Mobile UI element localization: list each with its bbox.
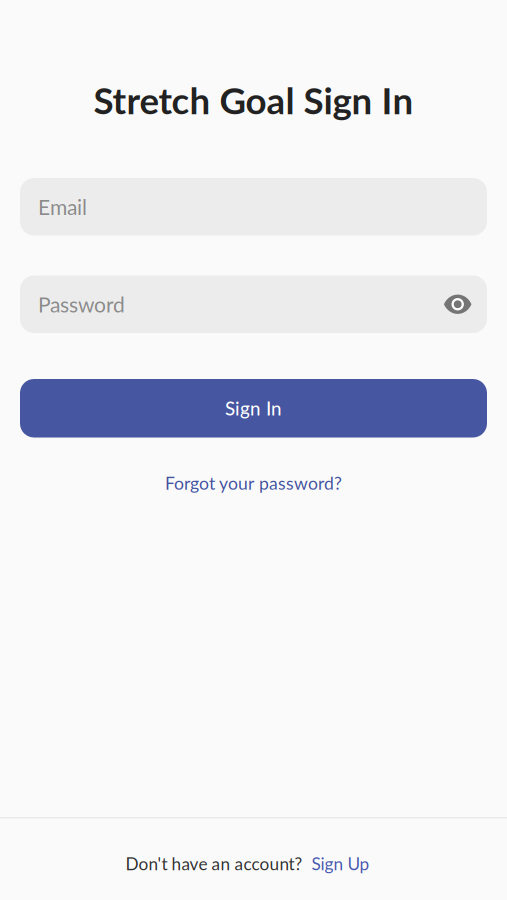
button[interactable]: Sign In [20, 379, 487, 437]
staticText: Sign In [225, 397, 282, 420]
button[interactable]: Sign Up [311, 853, 369, 874]
staticText: Stretch Goal Sign In [93, 78, 413, 122]
button[interactable]: Forgot your password? [165, 472, 342, 494]
button[interactable]: Email [20, 178, 487, 235]
staticText: Email [38, 194, 87, 219]
staticText: Forgot your password? [165, 472, 342, 494]
button[interactable] [444, 295, 471, 314]
staticText: Don't have an account? [125, 853, 302, 874]
button[interactable]: Password [20, 275, 487, 333]
staticText: Password [38, 292, 125, 317]
staticText: Sign Up [311, 853, 369, 874]
